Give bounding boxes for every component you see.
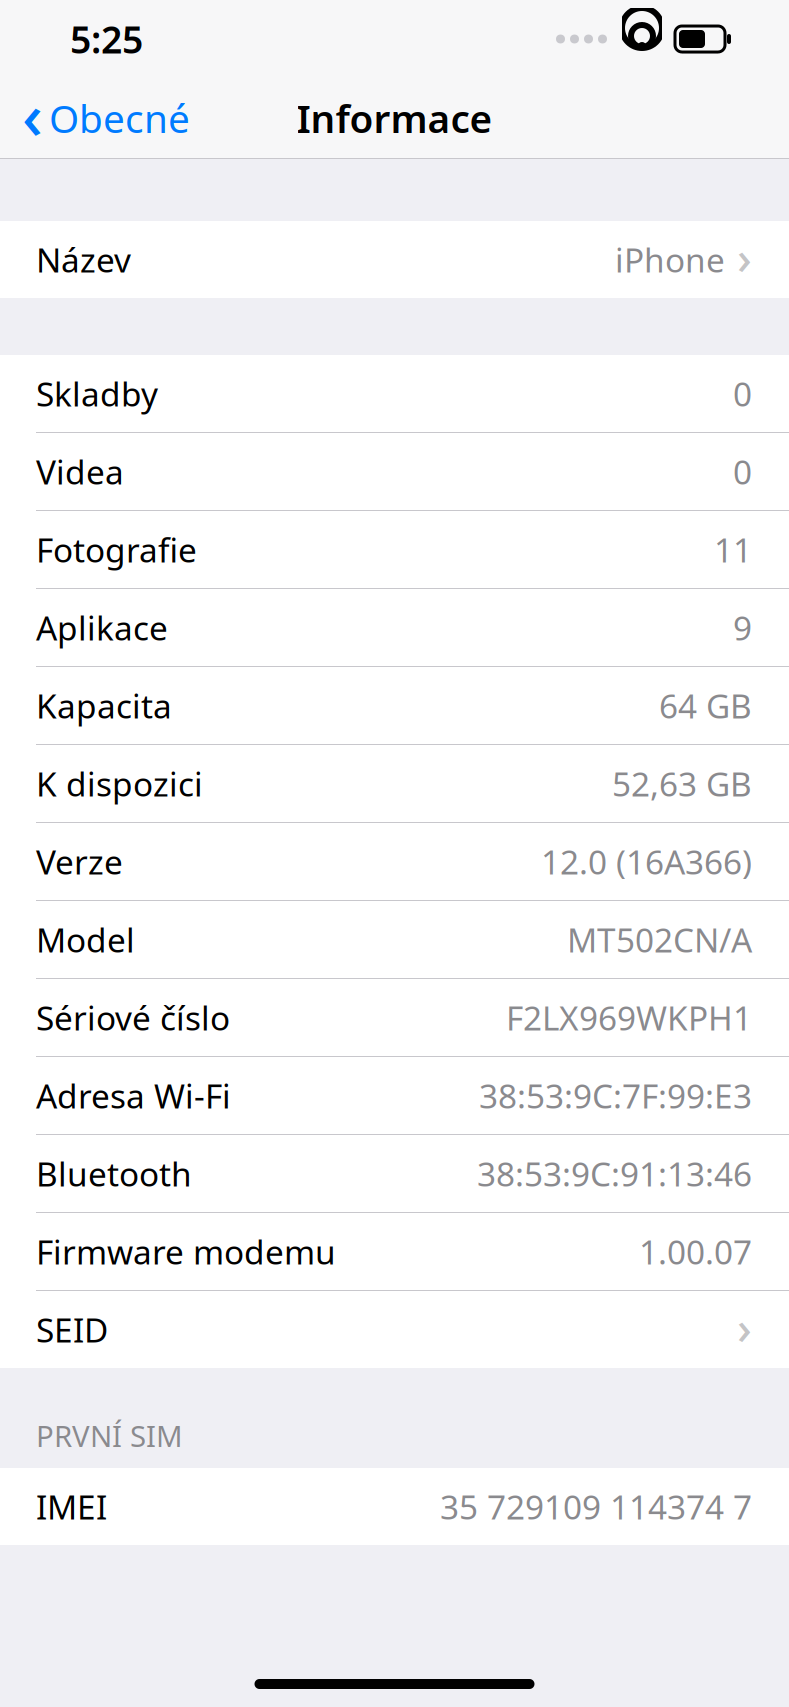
button[interactable]: SEID [0,1291,789,1368]
staticText: Bluetooth [36,1151,192,1196]
staticText: 38:53:9C:91:13:46 [477,1151,752,1196]
button[interactable]: IMEI [0,1468,789,1545]
staticText: 52,63 GB [612,761,752,806]
staticText: IMEI [36,1484,107,1529]
button[interactable]: Skladby [0,355,789,432]
staticText: K dispozici [36,761,203,806]
staticText: 9 [733,605,752,650]
staticText: 5:25 [70,14,143,64]
button[interactable]: Bluetooth [0,1135,789,1212]
staticText: Firmware modemu [36,1229,336,1274]
staticText: 35 729109 114374 7 [440,1484,752,1529]
staticText: Verze [36,839,123,884]
staticText: Obecné [49,92,190,144]
staticText: Aplikace [36,605,168,650]
staticText: MT502CN/A [567,917,752,962]
staticText: Skladby [36,371,158,416]
staticText: Kapacita [36,683,172,728]
staticText: 1.00.07 [639,1229,752,1274]
button[interactable]: Adresa Wi-Fi [0,1057,789,1134]
staticText: › [737,1297,752,1357]
staticText: ‹ [22,72,43,157]
staticText: Sériové číslo [36,995,230,1040]
staticText: 12.0 (16A366) [541,839,752,884]
button[interactable]: ‹ [0,78,204,158]
staticText: Fotografie [36,527,197,572]
staticText: Název [36,237,131,282]
staticText: F2LX969WKPH1 [506,995,752,1040]
button[interactable]: Název [0,221,789,298]
button[interactable]: Fotografie [0,511,789,588]
staticText: Informace [296,92,492,144]
button[interactable]: Aplikace [0,589,789,666]
button[interactable]: Model [0,901,789,978]
button[interactable]: Videa [0,433,789,510]
button[interactable]: Firmware modemu [0,1213,789,1290]
button[interactable]: K dispozici [0,745,789,822]
button[interactable]: Verze [0,823,789,900]
staticText: 38:53:9C:7F:99:E3 [479,1073,752,1118]
staticText: › [737,227,752,287]
staticText: 0 [733,449,752,494]
staticText: Videa [36,449,124,494]
button[interactable]: Sériové číslo [0,979,789,1056]
staticText: 0 [733,371,752,416]
button[interactable]: Kapacita [0,667,789,744]
staticText: Adresa Wi-Fi [36,1073,231,1118]
staticText: Model [36,917,135,962]
staticText: 11 [714,527,752,572]
staticText: PRVNÍ SIM [36,1416,183,1455]
staticText: iPhone [615,237,725,282]
staticText: SEID [36,1307,108,1352]
staticText: 64 GB [659,683,752,728]
